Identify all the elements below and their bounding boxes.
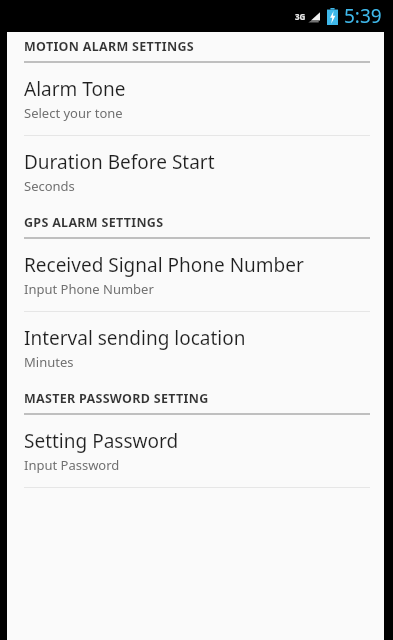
staticText: 3G xyxy=(295,11,306,22)
staticText: Setting Password xyxy=(24,428,179,454)
staticText: Interval sending location xyxy=(24,325,246,351)
other: Battery charging xyxy=(327,8,338,25)
staticText: 5:39 xyxy=(344,3,382,29)
staticText: MOTION ALARM SETTINGS xyxy=(24,38,195,55)
staticText: Input Phone Number xyxy=(24,280,154,298)
staticText: Duration Before Start xyxy=(24,149,215,175)
staticText: Minutes xyxy=(24,353,74,371)
button[interactable]: Setting Password xyxy=(7,415,384,487)
staticText: Received Signal Phone Number xyxy=(24,252,304,278)
staticText: Alarm Tone xyxy=(24,76,126,102)
button[interactable]: Alarm Tone xyxy=(7,63,384,135)
staticText: Seconds xyxy=(24,177,75,195)
staticText: Select your tone xyxy=(24,104,123,122)
staticText: Input Password xyxy=(24,456,120,474)
staticText: MASTER PASSWORD SETTING xyxy=(24,390,209,407)
button[interactable]: Duration Before Start xyxy=(7,136,384,208)
staticText: GPS ALARM SETTINGS xyxy=(24,214,164,231)
button[interactable]: Received Signal Phone Number xyxy=(7,239,384,311)
button[interactable]: Interval sending location xyxy=(7,312,384,384)
